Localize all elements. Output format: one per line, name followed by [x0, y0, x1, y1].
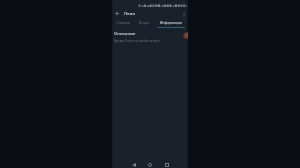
- button[interactable]: Главная: [112, 18, 133, 29]
- button[interactable]: Channel thumbnail: [183, 32, 188, 39]
- button[interactable]: More options: [179, 10, 188, 19]
- staticText: Информация: [160, 21, 182, 25]
- staticText: Время Стиля на моём канале: [114, 39, 161, 43]
- button[interactable]: Информация: [157, 18, 185, 29]
- button[interactable]: Back: [128, 159, 139, 168]
- staticText: Главная: [116, 21, 130, 25]
- staticText: Видео: [139, 21, 150, 25]
- button[interactable]: Home: [144, 159, 155, 168]
- button[interactable]: Back: [113, 9, 122, 18]
- button[interactable]: Видео: [134, 18, 155, 29]
- button[interactable]: Recents: [161, 159, 172, 168]
- staticText: Леон: [124, 11, 136, 17]
- staticText: Описание: [114, 31, 136, 37]
